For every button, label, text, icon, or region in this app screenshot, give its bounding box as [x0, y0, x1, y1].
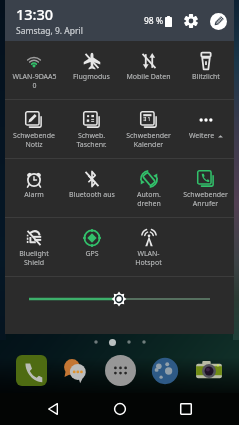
- button[interactable]: Edit tiles: [208, 11, 228, 31]
- staticText: Schwebender Kalender: [126, 131, 171, 149]
- staticText: Bluelight Shield: [19, 249, 49, 267]
- button[interactable]: Recents: [168, 393, 204, 425]
- staticText: Flugmodus: [73, 72, 110, 82]
- staticText: Schwebender Anrufer: [183, 190, 228, 208]
- button[interactable]: Alarm: [5, 159, 63, 218]
- staticText: Autom. drehen: [137, 190, 161, 208]
- button[interactable]: Browser: [149, 355, 180, 386]
- button[interactable]: Bluetooth aus: [63, 159, 120, 218]
- button[interactable]: Schwebende Notiz: [5, 100, 63, 159]
- staticText: Samstag, 9. April: [16, 25, 83, 37]
- button[interactable]: Schweb. Taschenr.: [63, 100, 120, 159]
- button[interactable]: Blitzlicht: [177, 41, 234, 100]
- staticText: Alarm: [24, 190, 44, 200]
- button[interactable]: GPS: [63, 218, 120, 277]
- button[interactable]: WLAN-9DAA5 0: [5, 41, 63, 100]
- staticText: Blitzlicht: [192, 72, 220, 82]
- button[interactable]: Mobile Daten: [120, 41, 177, 100]
- button[interactable]: Schwebender Anrufer: [177, 159, 234, 218]
- staticText: Weitere: [189, 131, 215, 141]
- button[interactable]: Camera: [193, 355, 224, 386]
- staticText: Schwebende Notiz: [13, 131, 55, 149]
- staticText: WLAN- Hotspot: [135, 249, 162, 267]
- button[interactable]: Flugmodus: [63, 41, 120, 100]
- button[interactable]: Messages: [60, 355, 91, 386]
- button[interactable]: Autom. drehen: [120, 159, 177, 218]
- staticText: GPS: [85, 249, 99, 259]
- button[interactable]: All apps: [105, 355, 136, 386]
- button[interactable]: Home: [102, 393, 138, 425]
- button[interactable]: Back: [35, 393, 71, 425]
- button[interactable]: Bluelight Shield: [5, 218, 63, 277]
- staticText: 98 %: [144, 15, 163, 27]
- staticText: Schweb. Taschenr.: [76, 131, 107, 149]
- button[interactable]: Phone: [16, 355, 47, 386]
- staticText: Mobile Daten: [126, 72, 171, 82]
- button[interactable]: Schwebender Kalender: [120, 100, 177, 159]
- button[interactable]: Settings: [181, 11, 201, 31]
- button[interactable]: Weitere: [177, 100, 234, 159]
- staticText: WLAN-9DAA5 0: [12, 72, 57, 90]
- staticText: 13:30: [16, 4, 54, 24]
- staticText: Bluetooth aus: [69, 190, 115, 200]
- button[interactable]: WLAN- Hotspot: [120, 218, 177, 277]
